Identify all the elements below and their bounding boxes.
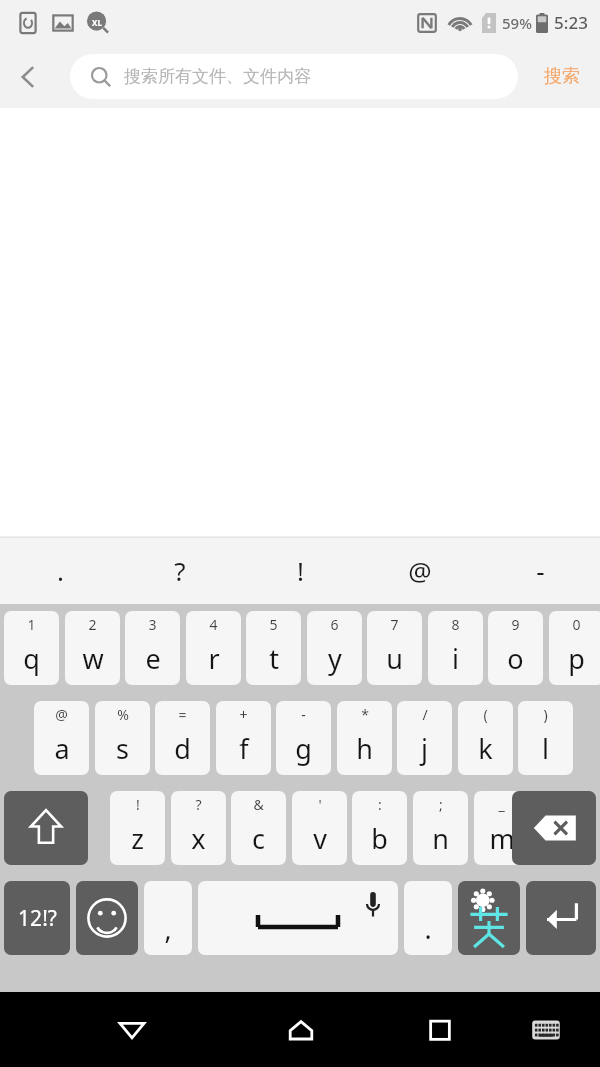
button[interactable]: Back: [104, 1002, 160, 1058]
button[interactable]: (: [458, 701, 513, 775]
button[interactable]: -: [276, 701, 331, 775]
button[interactable]: 6: [307, 611, 362, 685]
staticText: n: [432, 820, 449, 857]
button[interactable]: Home: [273, 1002, 329, 1058]
staticText: l: [542, 730, 549, 767]
staticText: z: [131, 820, 144, 857]
button[interactable]: @: [34, 701, 89, 775]
staticText: 8: [451, 615, 460, 634]
button[interactable]: !: [240, 537, 360, 604]
staticText: !: [136, 795, 140, 814]
staticText: i: [452, 640, 459, 677]
button[interactable]: /: [397, 701, 452, 775]
staticText: _: [498, 795, 505, 814]
button[interactable]: 5: [246, 611, 301, 685]
button[interactable]: Language: [458, 881, 520, 955]
staticText: .: [57, 553, 64, 588]
staticText: /: [422, 705, 428, 724]
button[interactable]: 搜索所有文件、文件内容: [70, 54, 518, 99]
button[interactable]: Backspace: [512, 791, 596, 865]
staticText: ?: [174, 553, 186, 588]
staticText: ;: [439, 795, 443, 814]
staticText: u: [386, 640, 403, 677]
button[interactable]: ): [518, 701, 573, 775]
button[interactable]: 2: [65, 611, 120, 685]
staticText: ): [543, 705, 548, 724]
button[interactable]: @: [360, 537, 480, 604]
staticText: !: [297, 553, 304, 588]
button[interactable]: Recents: [412, 1002, 468, 1058]
staticText: e: [145, 640, 161, 677]
staticText: 搜索所有文件、文件内容: [124, 66, 311, 87]
button[interactable]: =: [155, 701, 210, 775]
staticText: 1: [27, 615, 36, 634]
staticText: *: [361, 705, 369, 724]
button[interactable]: *: [337, 701, 392, 775]
button[interactable]: Hide keyboard: [520, 1004, 572, 1056]
button[interactable]: Emoji: [76, 881, 138, 955]
button[interactable]: 9: [488, 611, 543, 685]
button[interactable]: -: [480, 537, 600, 604]
staticText: q: [23, 640, 40, 677]
staticText: f: [239, 730, 249, 767]
staticText: m: [489, 820, 515, 857]
staticText: g: [295, 730, 312, 767]
button[interactable]: ?: [171, 791, 226, 865]
button[interactable]: !: [110, 791, 165, 865]
button[interactable]: +: [216, 701, 271, 775]
button[interactable]: _: [474, 791, 529, 865]
button[interactable]: Space: [198, 881, 398, 955]
staticText: a: [54, 730, 70, 767]
staticText: ,: [164, 910, 172, 947]
button[interactable]: 0: [549, 611, 600, 685]
staticText: @: [408, 553, 432, 588]
staticText: .: [424, 910, 432, 947]
staticText: XL: [92, 17, 102, 28]
staticText: j: [421, 730, 428, 767]
staticText: :: [378, 795, 382, 814]
staticText: 59%: [502, 13, 532, 33]
staticText: t: [269, 640, 279, 677]
staticText: %: [117, 705, 129, 724]
staticText: 12!?: [18, 904, 57, 933]
button[interactable]: 1: [4, 611, 59, 685]
staticText: w: [82, 640, 104, 677]
button[interactable]: 8: [428, 611, 483, 685]
button[interactable]: 搜索: [524, 45, 600, 108]
button[interactable]: &: [231, 791, 286, 865]
staticText: p: [568, 640, 585, 677]
staticText: o: [507, 640, 524, 677]
staticText: 7: [390, 615, 399, 634]
staticText: -: [301, 705, 306, 724]
button[interactable]: ;: [413, 791, 468, 865]
button[interactable]: :: [352, 791, 407, 865]
button[interactable]: Enter: [526, 881, 596, 955]
button[interactable]: 4: [186, 611, 241, 685]
staticText: r: [208, 640, 220, 677]
staticText: 5: [269, 615, 278, 634]
staticText: x: [191, 820, 206, 857]
button[interactable]: .: [0, 537, 120, 604]
button[interactable]: Back: [0, 48, 58, 106]
staticText: 0: [572, 615, 581, 634]
staticText: -: [536, 553, 545, 588]
button[interactable]: ,: [144, 881, 192, 955]
staticText: 3: [148, 615, 157, 634]
button[interactable]: ?: [120, 537, 240, 604]
staticText: +: [239, 705, 248, 724]
button[interactable]: ': [292, 791, 347, 865]
button[interactable]: 3: [125, 611, 180, 685]
staticText: h: [356, 730, 373, 767]
button[interactable]: 7: [367, 611, 422, 685]
staticText: @: [55, 705, 68, 724]
button[interactable]: Shift: [4, 791, 88, 865]
staticText: b: [371, 820, 388, 857]
staticText: y: [328, 640, 342, 677]
staticText: 5:23: [554, 11, 588, 34]
button[interactable]: %: [95, 701, 150, 775]
button[interactable]: .: [404, 881, 452, 955]
staticText: d: [174, 730, 191, 767]
staticText: ': [318, 795, 322, 814]
button[interactable]: 12!?: [4, 881, 70, 955]
staticText: 搜索: [544, 65, 580, 88]
